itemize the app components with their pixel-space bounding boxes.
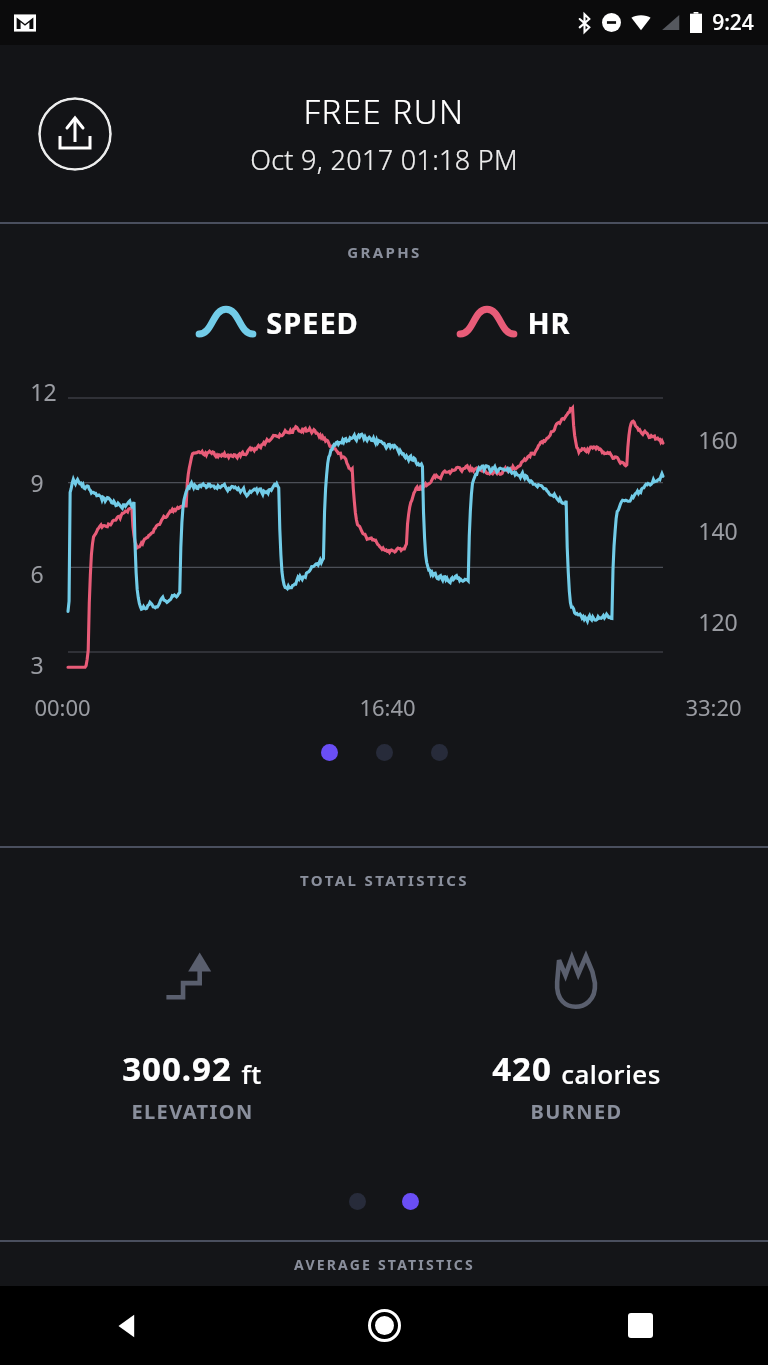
staticText: 16:40 <box>359 692 416 722</box>
staticText: BURNED <box>530 1098 623 1125</box>
button[interactable]: Back <box>0 1286 256 1365</box>
staticText: 00:00 <box>34 692 91 722</box>
button[interactable] <box>376 744 393 761</box>
staticText: ft <box>241 1056 262 1091</box>
staticText: Oct 9, 2017 01:18 PM <box>250 141 518 178</box>
staticText: FREE RUN <box>303 89 465 134</box>
staticText: 160 <box>698 424 738 455</box>
staticText: 9 <box>30 467 44 498</box>
staticText: 140 <box>698 515 738 546</box>
staticText: SPEED <box>266 303 359 342</box>
staticText: 420 <box>492 1046 552 1091</box>
staticText: 3 <box>30 649 44 680</box>
button[interactable]: 300.92 <box>122 946 262 1125</box>
staticText: AVERAGE STATISTICS <box>294 1255 475 1274</box>
button[interactable]: SPEED <box>198 302 359 342</box>
staticText: HR <box>527 303 571 342</box>
button[interactable]: HR <box>459 302 571 342</box>
staticText: GRAPHS <box>347 242 422 262</box>
button[interactable] <box>431 744 448 761</box>
button[interactable] <box>402 1193 419 1210</box>
button[interactable]: Home <box>256 1286 512 1365</box>
staticText: calories <box>561 1056 661 1091</box>
staticText: 120 <box>698 606 738 637</box>
button[interactable]: Share <box>38 97 112 171</box>
button[interactable]: 420 <box>492 946 661 1125</box>
staticText: TOTAL STATISTICS <box>300 870 469 890</box>
staticText: 6 <box>30 558 44 589</box>
staticText: 300.92 <box>122 1046 232 1091</box>
staticText: 9:24 <box>712 8 754 37</box>
button[interactable]: Recents <box>512 1286 768 1365</box>
staticText: ELEVATION <box>131 1098 254 1125</box>
button[interactable] <box>349 1193 366 1210</box>
staticText: 12 <box>30 376 57 407</box>
staticText: 33:20 <box>685 692 742 722</box>
button[interactable] <box>321 744 338 761</box>
